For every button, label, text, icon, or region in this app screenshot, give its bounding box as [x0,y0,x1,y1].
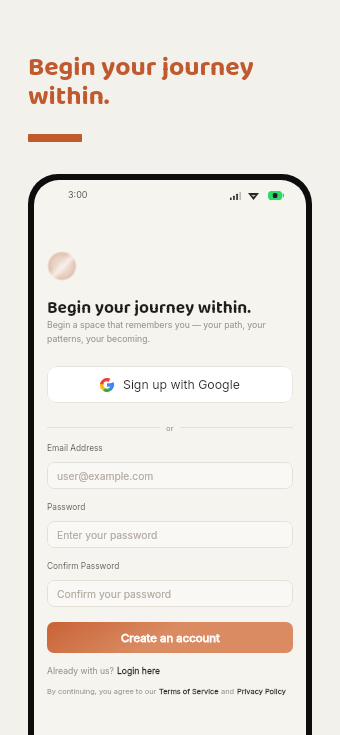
button[interactable]: Enter your password [47,521,293,548]
staticText: Terms of Service [159,687,219,696]
staticText: Privacy Policy [237,687,286,696]
staticText: Sign up with Google [123,377,240,392]
staticText: and [219,687,237,696]
button[interactable]: Create an account [47,622,293,653]
staticText: Enter your password [57,529,158,541]
button[interactable]: Already with us? [47,666,161,676]
staticText: Password [47,502,86,512]
staticText: Begin your journey within. [28,46,254,117]
staticText: user@example.com [57,470,154,482]
staticText: Login here [117,666,161,676]
staticText: By continuing, you agree to our [47,687,159,696]
staticText: Confirm your password [57,588,172,600]
button[interactable]: Confirm your password [47,580,293,607]
staticText: Already with us? [47,666,117,676]
staticText: Create an account [121,631,220,645]
staticText: or [166,423,174,432]
staticText: Email Address [47,443,103,453]
button[interactable]: user@example.com [47,462,293,489]
staticText: Begin your journey within. [47,294,252,322]
staticText: Confirm Password [47,561,120,571]
staticText: Begin a space that remembers you — your … [47,320,266,344]
staticText: 3:00 [68,189,88,200]
button[interactable]: Sign up with Google [47,366,293,403]
